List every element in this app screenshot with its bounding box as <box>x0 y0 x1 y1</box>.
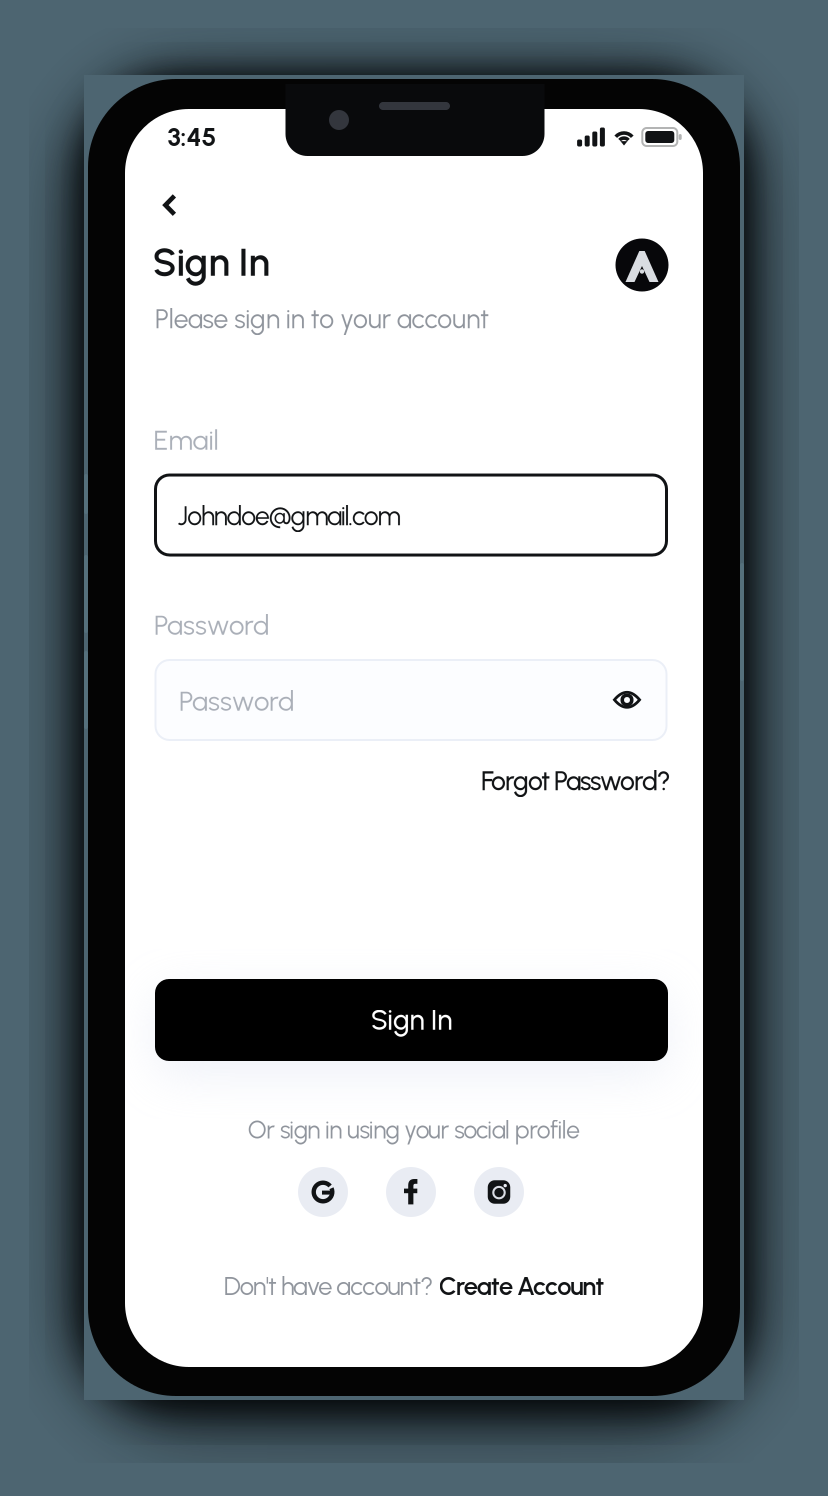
staticText: Don't have account? <box>224 1271 439 1301</box>
button[interactable]: Sign in with Instagram <box>474 1167 524 1217</box>
button[interactable]: Back <box>147 182 193 228</box>
staticText: Please sign in to your account <box>155 303 489 335</box>
staticText: Password <box>154 608 270 641</box>
staticText: Sign In <box>371 1003 452 1037</box>
button[interactable]: Show password <box>605 678 649 722</box>
button[interactable]: Don't have account? <box>224 1265 604 1307</box>
staticText: Johndoe@gmail.com <box>177 500 400 532</box>
staticText: Sign In <box>152 239 269 285</box>
button[interactable]: Sign in with Google <box>298 1167 348 1217</box>
staticText: Create Account <box>439 1271 604 1301</box>
staticText: Password <box>179 684 295 717</box>
button[interactable]: Brand <box>615 238 668 291</box>
staticText: Forgot Password? <box>481 765 671 797</box>
button[interactable]: Forgot Password? <box>481 759 671 803</box>
button[interactable]: Sign In <box>155 979 668 1061</box>
button[interactable]: Sign in with Facebook <box>386 1167 436 1217</box>
staticText: Email <box>153 423 218 456</box>
staticText: Or sign in using your social profile <box>248 1115 580 1145</box>
staticText: 3:45 <box>167 121 216 153</box>
